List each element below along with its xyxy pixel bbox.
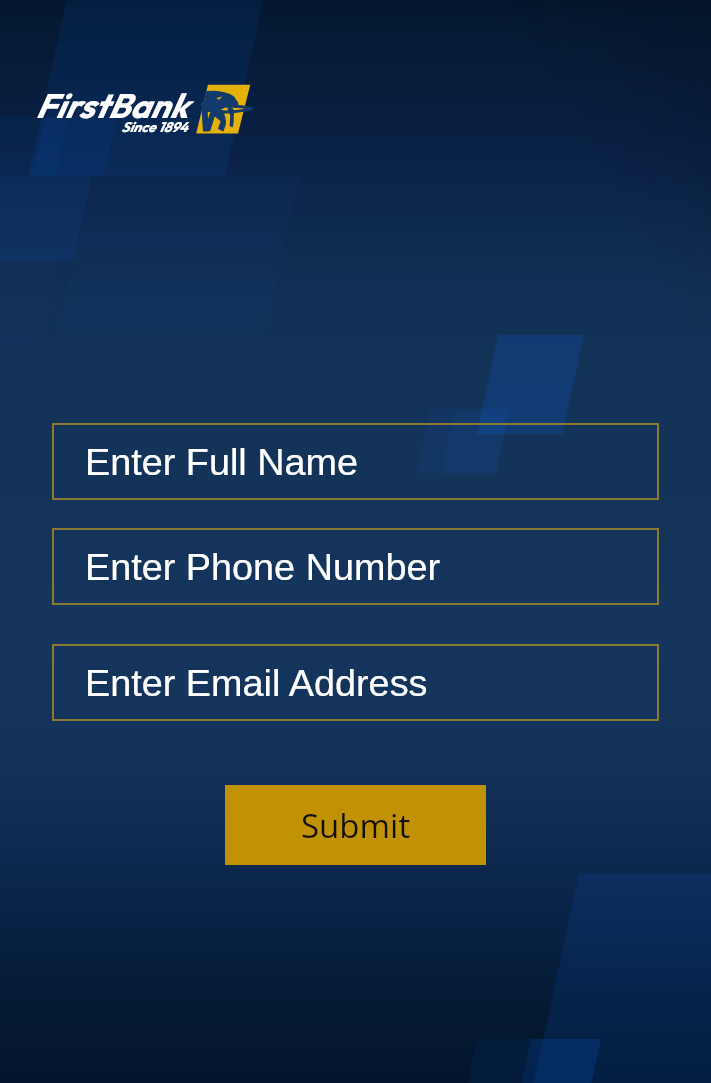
staticText: Enter Email Address [85, 662, 428, 704]
button[interactable]: Enter Phone Number [52, 528, 659, 605]
staticText: Enter Phone Number [85, 546, 441, 588]
button[interactable]: Submit [225, 785, 486, 865]
button[interactable]: Enter Email Address [52, 644, 659, 721]
staticText: FirstBank [35, 84, 188, 127]
button[interactable]: Enter Full Name [52, 423, 659, 500]
staticText: Since 1894 [121, 118, 188, 136]
staticText: Enter Full Name [85, 441, 359, 483]
staticText: Submit [301, 803, 411, 848]
